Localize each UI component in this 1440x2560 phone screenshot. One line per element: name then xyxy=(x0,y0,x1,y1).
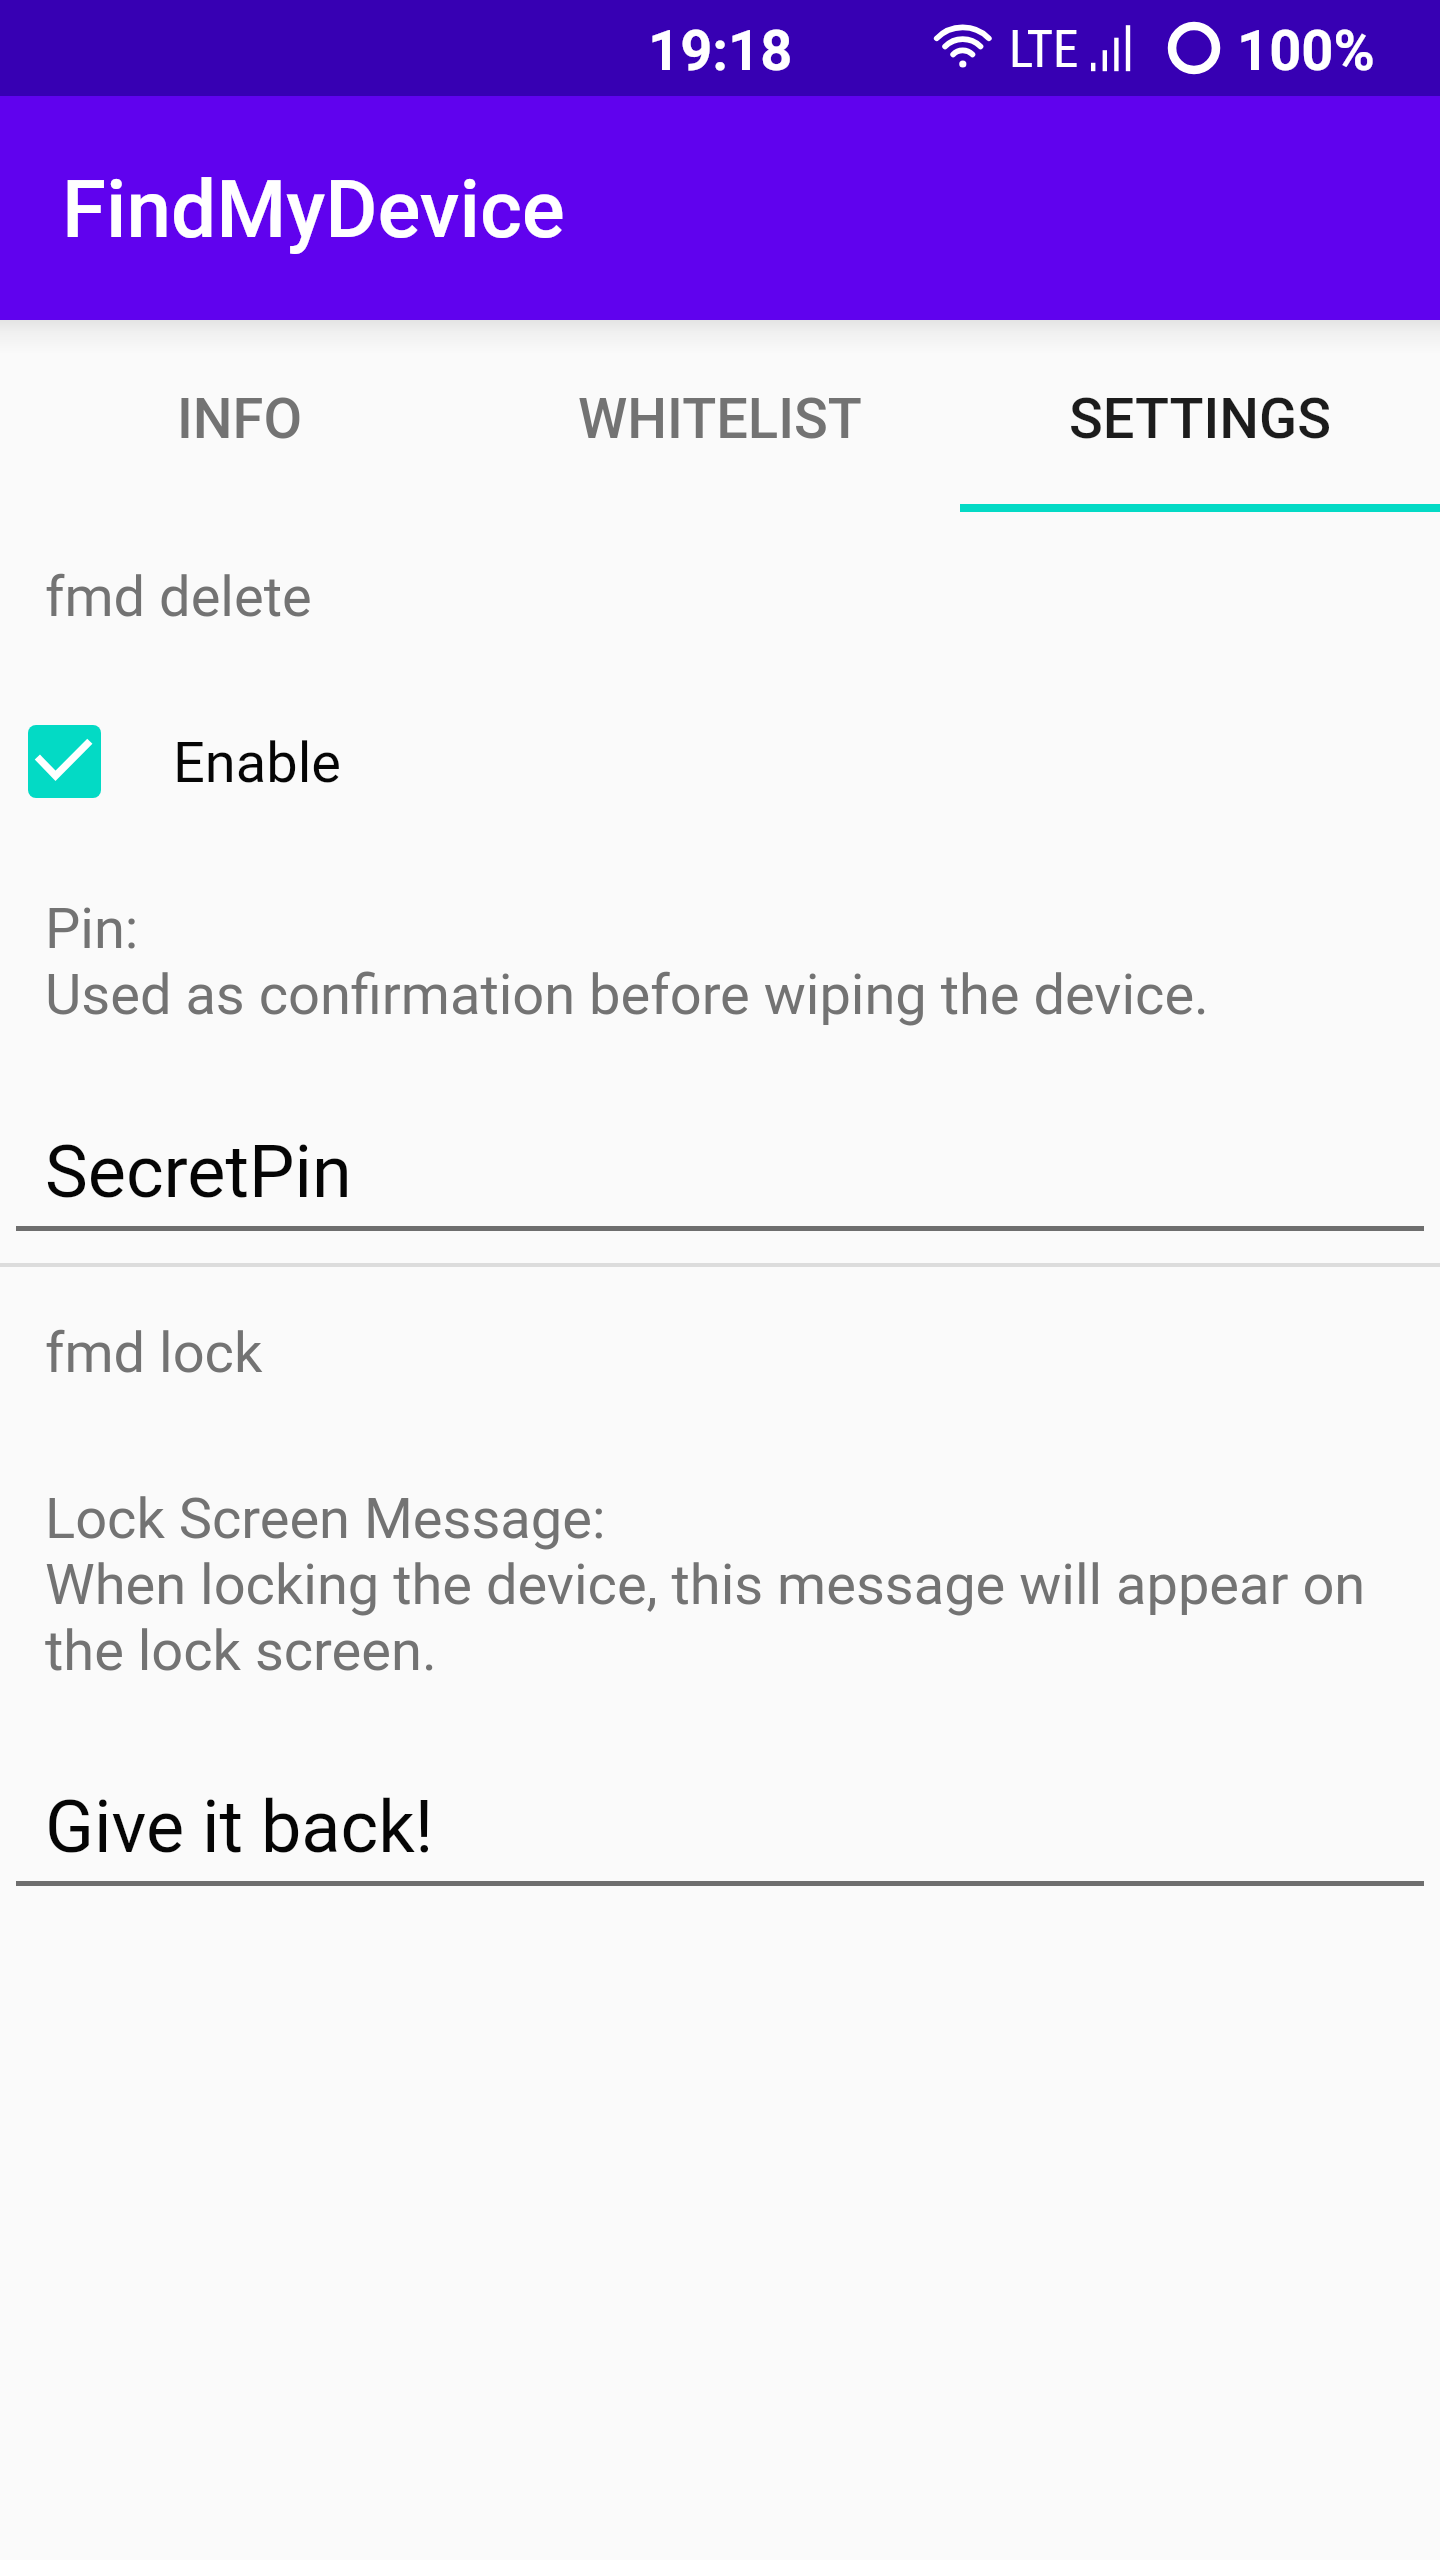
staticText: LTE xyxy=(1009,20,1079,80)
staticText: fmd lock xyxy=(45,1320,263,1386)
button[interactable]: WHITELIST xyxy=(480,320,960,512)
staticText: 19:18 xyxy=(648,18,793,84)
staticText: INFO xyxy=(177,386,303,452)
staticText: fmd delete xyxy=(45,564,312,630)
button[interactable]: SETTINGS xyxy=(960,320,1440,512)
staticText: SETTINGS xyxy=(1069,386,1332,452)
staticText: Pin: Used as confirmation before wiping … xyxy=(45,896,1209,1028)
other: Battery 100 percent xyxy=(1166,20,1222,76)
staticText: 100% xyxy=(1237,18,1375,84)
button[interactable] xyxy=(16,1128,1424,1231)
staticText: FindMyDevice xyxy=(62,163,565,257)
button[interactable]: Enable xyxy=(0,700,400,822)
staticText: Give it back! xyxy=(45,1785,434,1869)
staticText: Lock Screen Message: When locking the de… xyxy=(45,1486,1366,1684)
other: Wi-Fi xyxy=(930,18,996,72)
staticText: Enable xyxy=(173,730,341,796)
staticText: SecretPin xyxy=(45,1130,352,1214)
other: Mobile signal xyxy=(1091,24,1133,72)
button[interactable] xyxy=(16,1783,1424,1886)
staticText: WHITELIST xyxy=(578,386,862,452)
button[interactable]: INFO xyxy=(0,320,480,512)
